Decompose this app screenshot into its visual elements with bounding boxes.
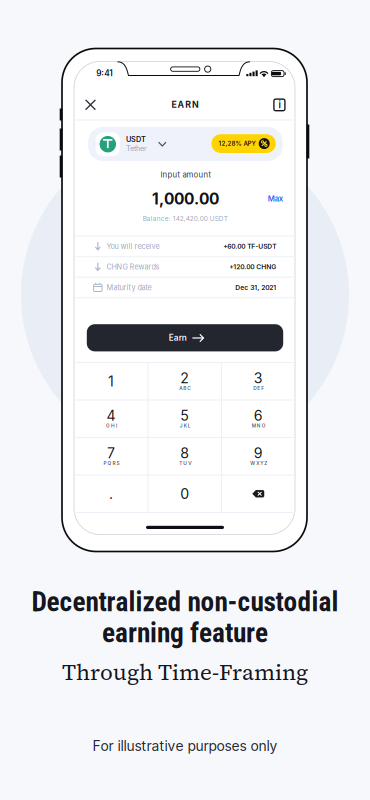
staticText: 8: [180, 444, 189, 462]
button[interactable]: 2: [148, 362, 221, 400]
button[interactable]: 3: [221, 362, 295, 400]
staticText: P Q R S: [103, 460, 119, 466]
button[interactable]: Info: [268, 94, 290, 116]
staticText: Earn: [169, 333, 187, 343]
staticText: 12,28% APY: [218, 140, 255, 147]
staticText: 5: [180, 407, 189, 424]
staticText: 0: [180, 485, 189, 502]
button[interactable]: 8: [148, 437, 221, 475]
staticText: Balance: 142,420.00 USDT: [143, 214, 228, 222]
button[interactable]: 1: [74, 362, 148, 400]
button[interactable]: 7: [74, 437, 148, 475]
staticText: EARN: [171, 99, 199, 110]
staticText: For illustrative purposes only: [92, 738, 277, 754]
staticText: 1: [108, 373, 114, 390]
staticText: USDT: [126, 135, 146, 144]
staticText: 9: [254, 444, 263, 462]
staticText: earning feature: [102, 617, 268, 649]
staticText: M N O: [252, 423, 266, 429]
staticText: Input amount: [160, 170, 211, 179]
button[interactable]: .: [74, 475, 148, 512]
staticText: CHNG Rewards: [106, 262, 159, 271]
staticText: 3: [254, 369, 263, 387]
button[interactable]: 5: [148, 400, 221, 437]
staticText: Decentralized non-custodial: [31, 586, 338, 618]
button[interactable]: Close: [79, 94, 101, 116]
staticText: Through Time-Framing: [62, 656, 308, 688]
staticText: 9:41: [96, 68, 112, 78]
staticText: .: [109, 485, 113, 502]
button[interactable]: Max: [262, 191, 288, 207]
staticText: A B C: [179, 385, 191, 391]
staticText: J K L: [180, 423, 191, 429]
staticText: Tether: [126, 144, 147, 153]
staticText: 7: [107, 444, 115, 462]
staticText: G H I: [106, 423, 117, 429]
staticText: T U V: [179, 460, 191, 466]
staticText: +60.00 TF-USDT: [223, 242, 276, 250]
staticText: Dec 31, 2021: [235, 283, 276, 292]
staticText: 2: [180, 369, 189, 387]
button[interactable]: 9: [221, 437, 295, 475]
button[interactable]: Earn: [0, 0, 370, 800]
button[interactable]: 12,28 percent APY: [0, 0, 370, 800]
staticText: Max: [268, 194, 283, 203]
staticText: D E F: [253, 385, 264, 391]
staticText: 6: [254, 407, 263, 424]
button[interactable]: 4: [74, 400, 148, 437]
staticText: W X Y Z: [250, 460, 267, 466]
button[interactable]: 6: [221, 400, 295, 437]
staticText: +120.00 CHNG: [229, 263, 276, 271]
button[interactable]: 0: [148, 475, 221, 512]
staticText: Maturity date: [106, 283, 151, 292]
button[interactable]: Delete: [221, 475, 295, 512]
button[interactable]: Select token: USDT Tether: [0, 0, 370, 800]
staticText: 4: [106, 407, 115, 424]
staticText: i: [278, 99, 280, 111]
staticText: 1,000.00: [152, 189, 219, 208]
staticText: You will receive: [106, 242, 159, 251]
